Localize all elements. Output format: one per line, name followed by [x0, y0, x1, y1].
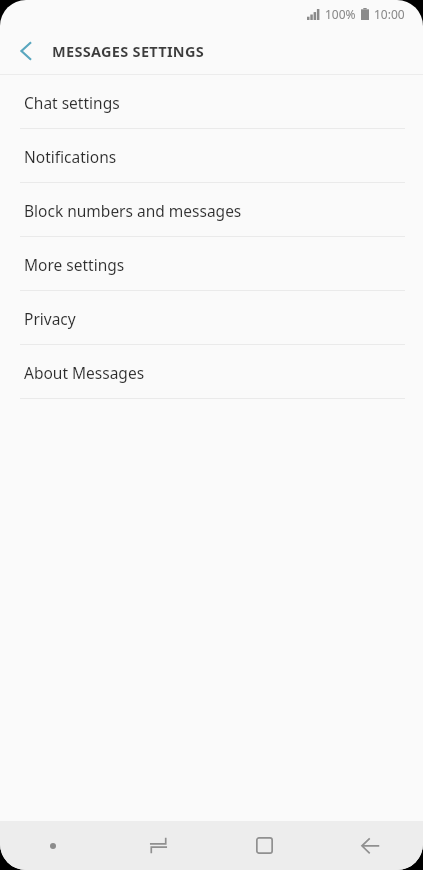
staticText: Notifications — [24, 146, 117, 167]
button[interactable]: Back — [317, 821, 423, 870]
staticText: Chat settings — [24, 92, 120, 113]
staticText: Privacy — [24, 308, 76, 329]
staticText: 100% — [325, 6, 356, 22]
button[interactable]: Show keyboard — [0, 821, 105, 870]
button[interactable]: Chat settings — [0, 75, 423, 129]
button[interactable]: About Messages — [0, 345, 423, 399]
button[interactable]: Notifications — [0, 129, 423, 183]
staticText: About Messages — [24, 362, 145, 383]
button[interactable]: Privacy — [0, 291, 423, 345]
button[interactable]: Block numbers and messages — [0, 183, 423, 237]
button[interactable]: Home — [211, 821, 317, 870]
button[interactable]: Recent apps — [105, 821, 211, 870]
staticText: 10:00 — [374, 6, 405, 22]
button[interactable]: More settings — [0, 237, 423, 291]
staticText: More settings — [24, 254, 125, 275]
staticText: Block numbers and messages — [24, 200, 242, 221]
button[interactable]: Back — [0, 28, 52, 74]
staticText: MESSAGES SETTINGS — [52, 41, 205, 61]
